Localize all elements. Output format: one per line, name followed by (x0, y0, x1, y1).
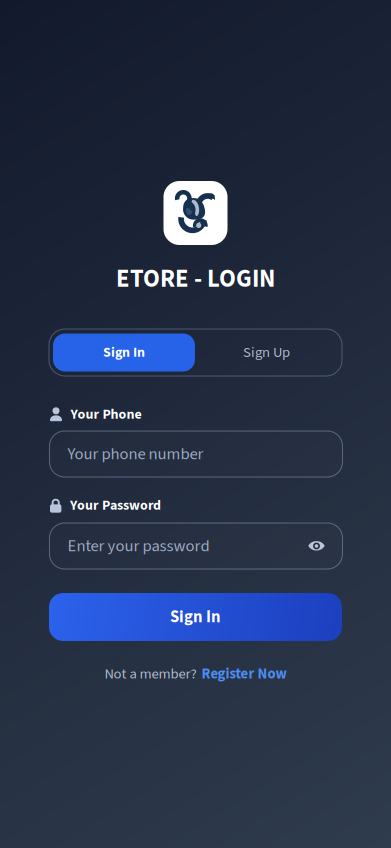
staticText: Sign In (103, 342, 145, 362)
button[interactable]: Sign In (49, 593, 342, 641)
button[interactable]: Sign Up (195, 333, 338, 371)
button[interactable]: Not a member? (0, 664, 391, 684)
staticText: Not a member? (104, 664, 196, 684)
staticText: ETORE - LOGIN (116, 261, 275, 296)
staticText: Your phone number (67, 442, 203, 466)
staticText: Enter your password (67, 534, 209, 558)
staticText: Your Password (70, 495, 161, 515)
staticText: Register Now (201, 664, 286, 684)
button[interactable]: Sign In (53, 333, 195, 371)
staticText: Your Phone (70, 404, 141, 424)
button[interactable]: Show password (302, 532, 330, 560)
staticText: Sign Up (243, 342, 290, 363)
staticText: Sign In (170, 605, 221, 629)
